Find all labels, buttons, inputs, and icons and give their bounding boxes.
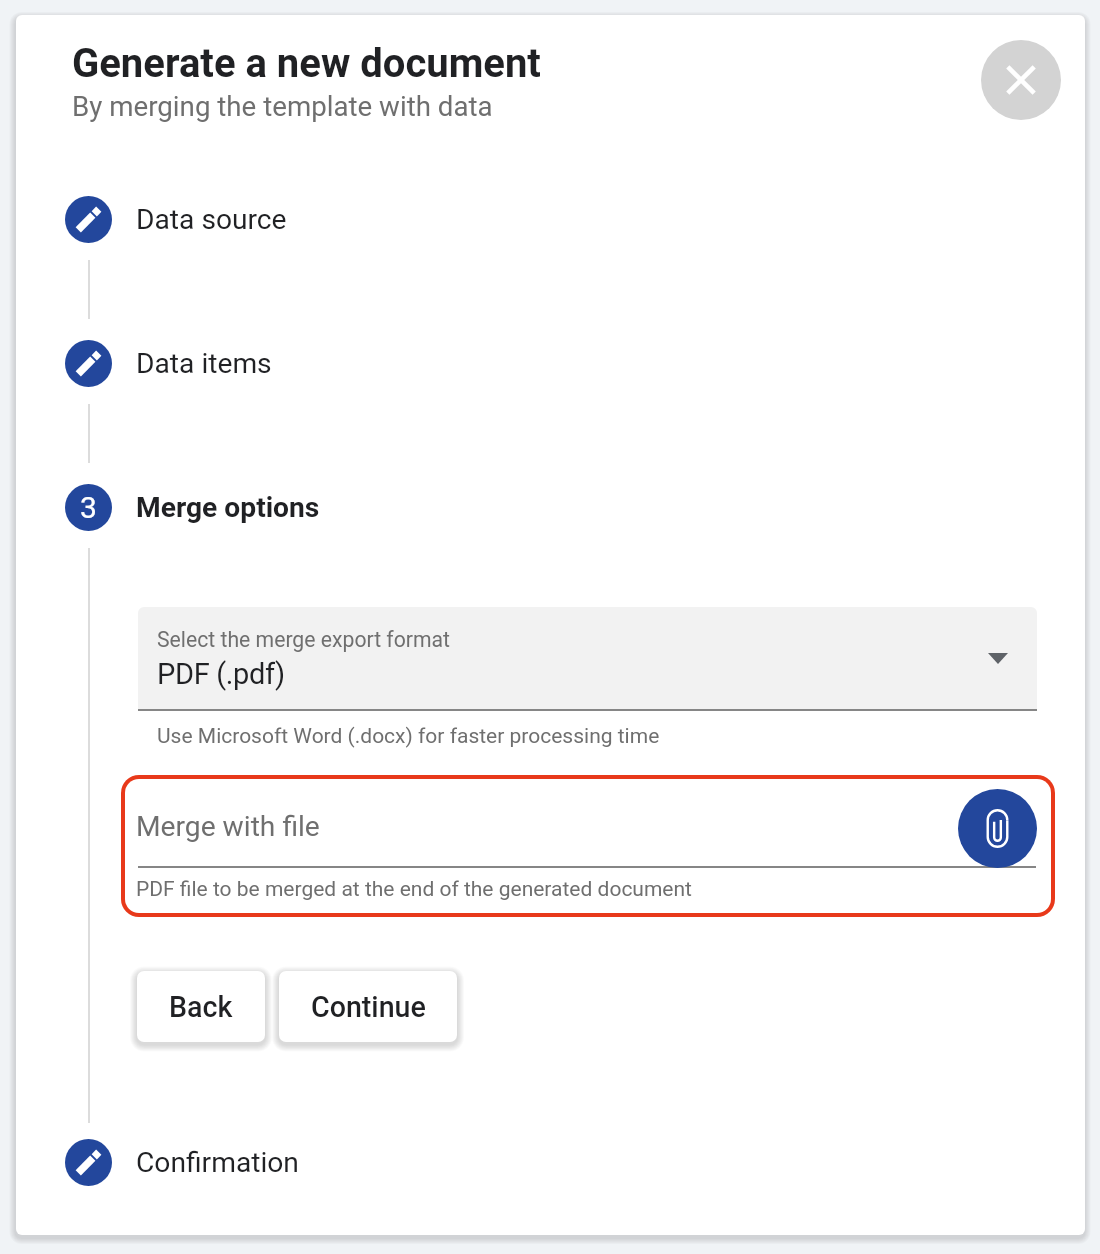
button[interactable]: Data source xyxy=(65,196,605,243)
button[interactable]: Data items xyxy=(65,340,605,387)
button[interactable]: Merge with file xyxy=(138,790,1036,867)
button[interactable]: Attach file xyxy=(958,789,1037,868)
staticText: Use Microsoft Word (.docx) for faster pr… xyxy=(157,724,660,749)
staticText: PDF (.pdf) xyxy=(157,657,285,691)
staticText: By merging the template with data xyxy=(72,90,493,122)
button[interactable]: 3 xyxy=(65,484,605,531)
button[interactable]: Continue xyxy=(279,971,457,1042)
button[interactable]: Confirmation xyxy=(65,1139,605,1186)
staticText: PDF file to be merged at the end of the … xyxy=(136,877,692,902)
staticText: 3 xyxy=(80,490,97,525)
button[interactable]: Back xyxy=(137,971,265,1042)
staticText: Generate a new document xyxy=(72,40,541,87)
staticText: Back xyxy=(169,990,233,1024)
button[interactable]: Select the merge export format xyxy=(138,607,1037,711)
staticText: Confirmation xyxy=(136,1146,299,1179)
staticText: Merge options xyxy=(136,491,320,524)
button[interactable]: Close xyxy=(981,40,1061,120)
staticText: Data source xyxy=(136,203,287,236)
staticText: Select the merge export format xyxy=(157,627,451,652)
staticText: Data items xyxy=(136,347,272,380)
staticText: Continue xyxy=(311,990,426,1024)
staticText: Merge with file xyxy=(136,810,320,843)
